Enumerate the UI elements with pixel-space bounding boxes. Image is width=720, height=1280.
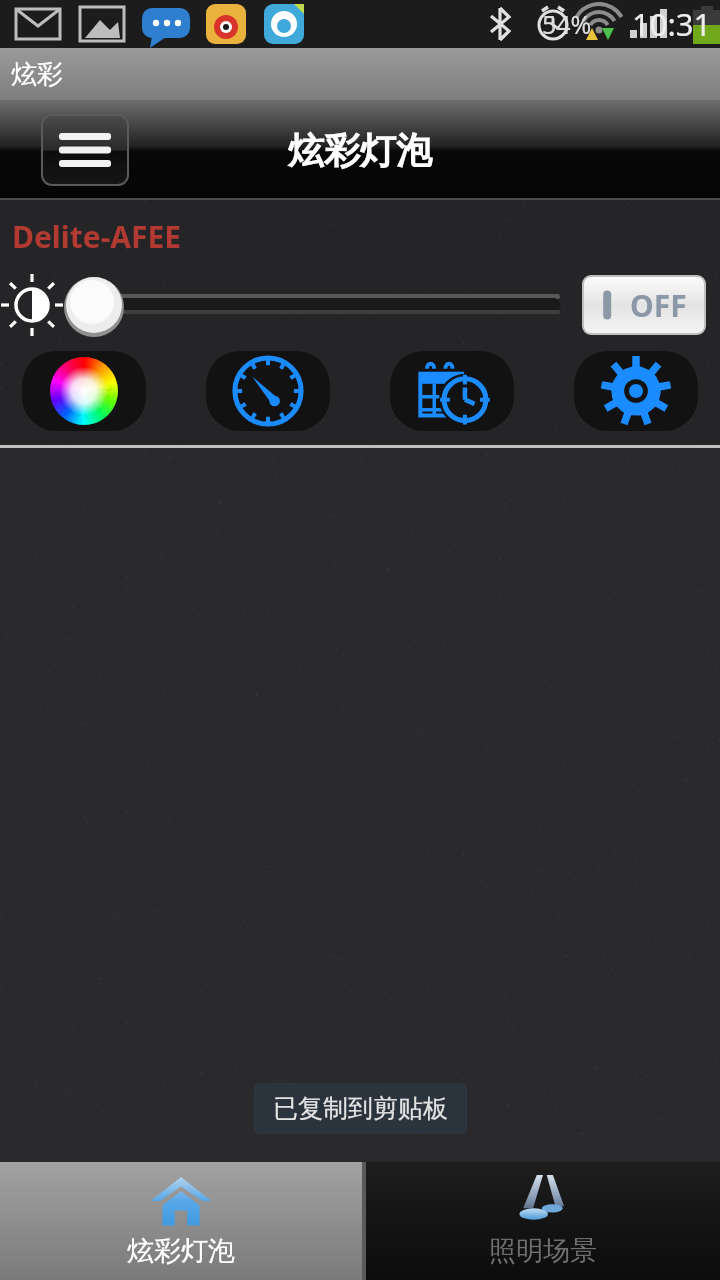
staticText: 炫彩灯泡 [127, 1234, 235, 1268]
button[interactable]: Color wheel [22, 351, 146, 431]
staticText: Delite-AFEE [12, 216, 182, 257]
button[interactable]: OFF [584, 277, 704, 333]
staticText: 照明场景 [489, 1234, 597, 1268]
button[interactable]: Timer [206, 351, 330, 431]
button[interactable]: Menu [43, 116, 127, 184]
button[interactable]: 炫彩灯泡 [0, 1162, 362, 1280]
button[interactable]: Settings [574, 351, 698, 431]
staticText: 10:31 [632, 3, 712, 45]
button[interactable]: 照明场景 [366, 1162, 720, 1280]
staticText: 炫彩 [11, 58, 63, 91]
staticText: 54% [542, 7, 592, 41]
staticText: 已复制到剪贴板 [273, 1093, 448, 1124]
staticText: OFF [630, 285, 687, 326]
staticText: 炫彩灯泡 [288, 128, 432, 173]
button[interactable]: Schedule [390, 351, 514, 431]
